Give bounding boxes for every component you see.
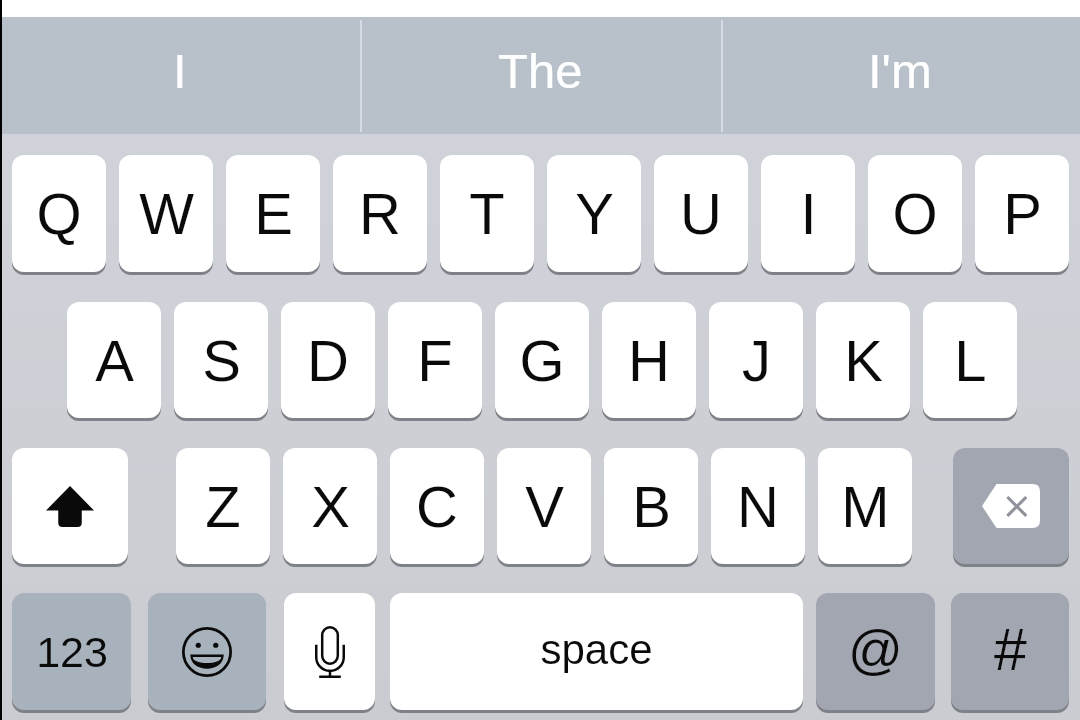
button[interactable]: M xyxy=(818,448,912,564)
staticText: K xyxy=(844,328,883,393)
button[interactable]: Z xyxy=(176,448,270,564)
staticText: M xyxy=(841,474,890,539)
button[interactable]: Q xyxy=(12,155,106,272)
button[interactable]: T xyxy=(440,155,534,272)
staticText: C xyxy=(416,474,458,539)
staticText: I xyxy=(800,181,817,246)
button[interactable]: P xyxy=(975,155,1069,272)
staticText: O xyxy=(892,181,938,246)
staticText: D xyxy=(307,328,349,393)
button[interactable]: Shift xyxy=(12,448,128,564)
staticText: F xyxy=(417,328,453,393)
button[interactable]: I'm xyxy=(720,13,1080,130)
staticText: U xyxy=(680,181,722,246)
button[interactable]: S xyxy=(174,302,268,418)
button[interactable]: U xyxy=(654,155,748,272)
staticText: 123 xyxy=(36,628,108,676)
button[interactable]: K xyxy=(816,302,910,418)
button[interactable]: I xyxy=(761,155,855,272)
button[interactable]: F xyxy=(388,302,482,418)
button[interactable]: H xyxy=(602,302,696,418)
button[interactable]: E xyxy=(226,155,320,272)
button[interactable]: Backspace xyxy=(953,448,1069,564)
button[interactable]: A xyxy=(67,302,161,418)
staticText: J xyxy=(742,328,771,393)
button[interactable]: # xyxy=(951,593,1069,710)
staticText: The xyxy=(498,44,583,99)
staticText: H xyxy=(628,328,670,393)
staticText: I'm xyxy=(868,44,932,99)
staticText: G xyxy=(519,328,565,393)
staticText: A xyxy=(95,328,134,393)
staticText: R xyxy=(359,181,401,246)
staticText: Z xyxy=(205,474,241,539)
staticText: L xyxy=(954,328,987,393)
staticText: Y xyxy=(575,181,614,246)
button[interactable]: Voice input xyxy=(284,593,375,710)
staticText: @ xyxy=(848,619,903,679)
button[interactable]: B xyxy=(604,448,698,564)
staticText: B xyxy=(632,474,671,539)
button[interactable]: R xyxy=(333,155,427,272)
staticText: N xyxy=(737,474,779,539)
staticText: Q xyxy=(36,181,82,246)
staticText: X xyxy=(311,474,350,539)
button[interactable]: 123 xyxy=(12,593,131,710)
staticText: E xyxy=(254,181,293,246)
button[interactable]: W xyxy=(119,155,213,272)
staticText: T xyxy=(469,181,505,246)
button[interactable]: Y xyxy=(547,155,641,272)
staticText: space xyxy=(540,626,653,673)
button[interactable]: L xyxy=(923,302,1017,418)
button[interactable]: @ xyxy=(816,593,935,710)
button[interactable]: space xyxy=(390,593,803,710)
staticText: # xyxy=(994,617,1027,683)
button[interactable]: X xyxy=(283,448,377,564)
button[interactable]: I xyxy=(0,13,360,130)
button[interactable]: N xyxy=(711,448,805,564)
button[interactable]: The xyxy=(360,13,720,130)
button[interactable]: J xyxy=(709,302,803,418)
staticText: P xyxy=(1003,181,1042,246)
button[interactable]: C xyxy=(390,448,484,564)
button[interactable]: D xyxy=(281,302,375,418)
staticText: S xyxy=(202,328,241,393)
button[interactable]: O xyxy=(868,155,962,272)
staticText: V xyxy=(525,474,564,539)
button[interactable]: G xyxy=(495,302,589,418)
button[interactable]: V xyxy=(497,448,591,564)
button[interactable]: Emoji xyxy=(148,593,266,710)
staticText: W xyxy=(139,181,194,246)
staticText: I xyxy=(173,44,187,99)
